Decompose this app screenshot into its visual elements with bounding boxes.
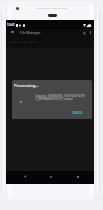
- staticText: CANCEL: [72, 111, 83, 115]
- button[interactable]: More options: [87, 29, 94, 36]
- staticText: 12:41: [7, 23, 15, 27]
- button[interactable]: Search: [80, 29, 88, 37]
- button[interactable]: Home: [45, 171, 57, 183]
- staticText: File Manager: [20, 30, 41, 34]
- button[interactable]: Phone Storage > DCIM: [10, 40, 37, 43]
- button[interactable]: Back: [19, 170, 31, 182]
- staticText: Copying: 100000000_1496766292781: [35, 94, 86, 98]
- button[interactable]: Recent apps: [72, 171, 84, 183]
- button[interactable]: Open navigation drawer: [8, 27, 17, 36]
- staticText: Processing...: [14, 83, 40, 89]
- button[interactable]: CANCEL: [69, 109, 86, 117]
- staticText: 2_B9FE8A88CF6C5C7_sampl: [35, 97, 73, 101]
- staticText: Phone Storage > DCIM: [10, 40, 37, 43]
